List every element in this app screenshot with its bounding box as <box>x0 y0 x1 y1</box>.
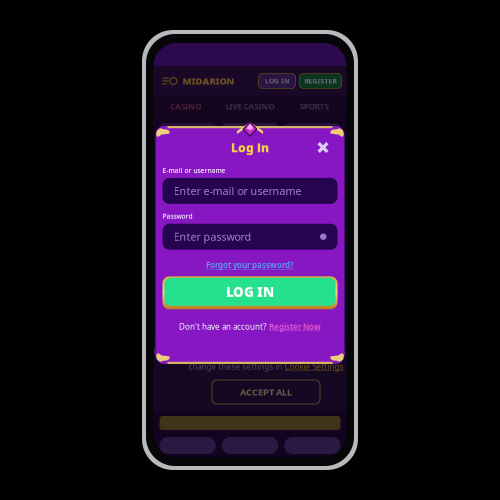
staticText: E-mail or username <box>162 166 225 175</box>
staticText: CASINO <box>170 101 201 112</box>
staticText: LIVE CASINO <box>225 101 274 112</box>
button[interactable]: SPORTS <box>282 101 346 112</box>
staticText: MIDARION <box>182 75 234 87</box>
staticText: for more info. You can <box>293 347 378 357</box>
staticText: Cookie Settings <box>284 361 343 372</box>
button[interactable]: Cookie Settings <box>284 361 343 372</box>
staticText: Enter password <box>173 230 251 244</box>
staticText: Password <box>162 212 192 221</box>
staticText: Enter e-mail or username <box>173 184 301 198</box>
button[interactable]: LIVE CASINO <box>218 101 282 112</box>
staticText: Log in <box>231 139 269 155</box>
staticText: ACCEPT ALL <box>240 386 292 398</box>
staticText: LOG IN <box>226 283 274 301</box>
button[interactable]: Register Now <box>269 321 321 332</box>
button[interactable]: LOG IN <box>258 73 295 88</box>
staticText: change these settings in <box>188 361 284 372</box>
button[interactable]: REGISTER <box>299 73 341 88</box>
button[interactable]: Close <box>313 138 332 157</box>
staticText: SPORTS <box>300 101 329 112</box>
staticText: We use cookies, check <box>153 347 240 357</box>
staticText: Don't have an account? <box>179 321 266 332</box>
button[interactable]: CASINO <box>153 101 218 112</box>
button[interactable]: Forgot your password? <box>200 256 300 274</box>
staticText: Register Now <box>269 321 321 332</box>
button[interactable]: Menu and search <box>159 73 179 89</box>
button[interactable]: LOG IN <box>162 276 337 309</box>
button[interactable]: ACCEPT ALL <box>212 380 320 404</box>
staticText: LOG IN <box>265 77 289 85</box>
staticText: REGISTER <box>304 77 336 85</box>
staticText: Forgot your password? <box>206 260 294 270</box>
